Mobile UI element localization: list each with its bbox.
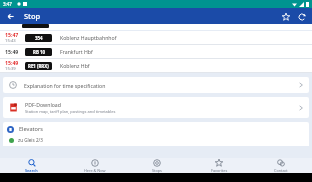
button[interactable]: PDF-Download — [3, 97, 309, 118]
button[interactable]: 15:49 — [0, 59, 312, 73]
button[interactable]: Elevators — [3, 122, 309, 146]
button[interactable]: Refresh — [295, 10, 308, 23]
staticText: Explanation for time specification — [24, 82, 106, 89]
button[interactable]: Back — [4, 10, 16, 22]
staticText: 15:49 — [5, 59, 19, 66]
staticText: zu Gleis 2/3 — [18, 137, 43, 143]
staticText: 354 — [35, 35, 43, 41]
staticText: PDF-Download — [25, 101, 61, 108]
button[interactable]: Explanation for time specification — [3, 77, 309, 93]
staticText: Koblenz Hauptbahnhof — [60, 34, 117, 41]
staticText: Stop — [24, 11, 41, 21]
button[interactable]: Search — [0, 158, 63, 173]
button[interactable]: Favorites — [188, 158, 250, 173]
button[interactable]: 15:47 — [0, 31, 312, 45]
button[interactable]: Favorite — [279, 10, 292, 23]
button[interactable]: Contact — [250, 158, 312, 173]
staticText: 15:47 — [5, 31, 19, 38]
button[interactable]: Stops — [126, 158, 188, 173]
staticText: Contact — [274, 168, 288, 173]
staticText: Station map, tariff plan, postings and t… — [25, 109, 116, 114]
staticText: Here & Now — [84, 168, 106, 173]
staticText: Favorites — [211, 168, 228, 173]
staticText: 15:39 — [5, 66, 16, 72]
staticText: Koblenz Hbf — [60, 62, 90, 69]
staticText: 15:49 — [5, 48, 19, 55]
staticText: Stops — [152, 168, 162, 173]
staticText: Search — [25, 168, 38, 173]
button[interactable]: 15:49 — [0, 45, 312, 59]
staticText: 15:43 — [5, 38, 16, 44]
staticText: RB 10 — [33, 49, 45, 55]
staticText: RE1 (RRX) — [28, 63, 49, 69]
staticText: Frankfurt Hbf — [60, 48, 93, 55]
staticText: Elevators — [19, 125, 43, 133]
staticText: 3:47 — [3, 1, 12, 7]
button[interactable]: Here & Now — [63, 158, 126, 173]
